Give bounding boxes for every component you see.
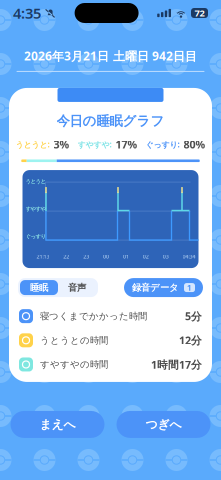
staticText: すやすや [25,206,45,212]
staticText: 1時間17分 [151,357,202,372]
button[interactable]: 録音データ [124,278,203,297]
staticText: 04:34 [182,253,195,260]
staticText: 00 [103,253,109,260]
staticText: 17% [115,137,137,151]
staticText: 録音データ [132,282,179,293]
staticText: すやすやの時間 [40,359,108,370]
staticText: 80% [183,137,205,151]
staticText: 02 [143,253,149,260]
staticText: 23 [83,253,89,260]
staticText: 音声 [68,282,86,293]
button[interactable]: 音声 [58,280,96,295]
staticText: うとうとの時間 [40,335,108,346]
staticText: 2026年3月21日 土曜日 942日目 [24,48,197,64]
staticText: ぐっすり: [145,139,179,150]
staticText: 3% [53,137,69,151]
staticText: 今日の睡眠グラフ [56,113,164,129]
staticText: 1 [187,282,192,293]
staticText: 21:13 [36,253,49,260]
staticText: まえへ [39,417,75,432]
staticText: 5分 [185,309,202,323]
staticText: 22 [63,253,69,260]
staticText: うとうと: [15,139,49,150]
staticText: つぎへ [145,417,181,432]
staticText: 寝つくまでかかった時間 [40,310,147,322]
button[interactable]: 寝つくまでかかった時間 [9,304,212,328]
staticText: 睡眠 [30,282,48,293]
button[interactable]: 睡眠 [20,280,58,295]
staticText: 72 [194,7,204,19]
staticText: うとうと [25,178,45,185]
staticText: 4:35 [13,3,41,23]
staticText: 03 [163,253,169,260]
button[interactable]: つぎへ [116,411,210,438]
staticText: 12分 [179,333,202,347]
button[interactable]: うとうとの時間 [9,328,212,352]
button[interactable]: まえへ [10,411,104,438]
staticText: ぐっすり [25,233,45,240]
button[interactable]: すやすやの時間 [9,352,212,377]
staticText: すやすや: [77,139,111,150]
staticText: 01 [123,253,129,260]
